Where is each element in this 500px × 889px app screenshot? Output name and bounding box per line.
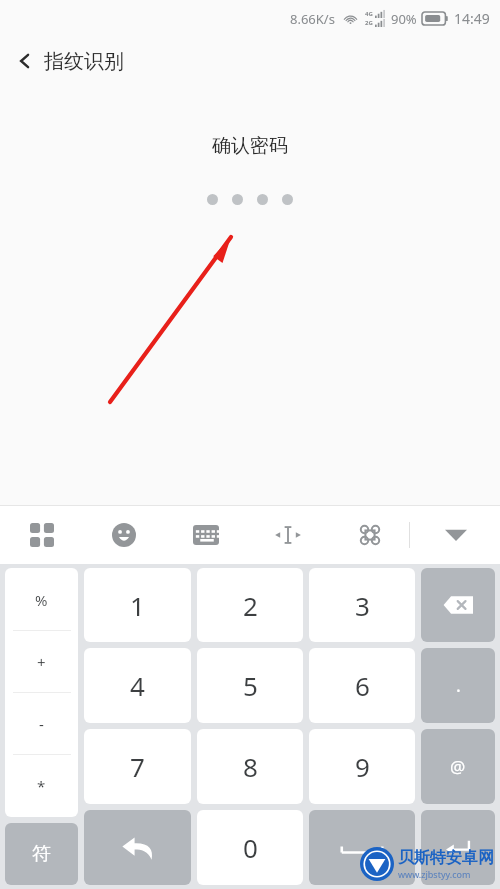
button[interactable]: 5 (197, 648, 303, 723)
button[interactable]: 2 (197, 568, 303, 642)
button[interactable]: Shortcuts (350, 515, 390, 555)
button[interactable]: + (5, 631, 78, 693)
staticText: 1 (130, 588, 145, 623)
staticText: 14:49 (454, 9, 490, 28)
staticText: 6 (355, 668, 370, 703)
button[interactable]: Hide keyboard (436, 515, 476, 555)
button[interactable]: At sign (421, 729, 495, 804)
staticText: www.zjbstyy.com (398, 868, 471, 880)
button[interactable]: Move cursor (268, 515, 308, 555)
staticText: 8.66K/s (290, 10, 335, 28)
button[interactable]: % (5, 568, 78, 631)
staticText: 4G (365, 10, 373, 18)
staticText: 4 (130, 668, 145, 703)
button[interactable]: Backspace return (84, 810, 191, 885)
button[interactable]: Period (421, 648, 495, 723)
staticText: 指纹识别 (44, 49, 124, 74)
button[interactable]: * (5, 755, 78, 817)
staticText: % (35, 590, 48, 610)
button[interactable]: Back (0, 36, 500, 86)
staticText: 符 (32, 842, 51, 866)
staticText: 2 (243, 588, 258, 623)
button[interactable]: 1 (84, 568, 191, 642)
staticText: 90% (391, 10, 417, 28)
staticText: 8 (243, 749, 258, 784)
button[interactable]: Keyboard layouts (22, 515, 62, 555)
staticText: 3 (355, 588, 370, 623)
staticText: . (456, 673, 461, 698)
staticText: 2G (365, 19, 373, 27)
staticText: 5 (243, 668, 258, 703)
button[interactable]: 符 (5, 823, 78, 885)
button[interactable]: - (5, 693, 78, 755)
staticText: * (37, 776, 46, 796)
button[interactable]: 3 (309, 568, 415, 642)
staticText: 贝斯特安卓网 (398, 848, 494, 868)
button[interactable]: 8 (197, 729, 303, 804)
staticText: 7 (130, 749, 145, 784)
button[interactable]: 6 (309, 648, 415, 723)
staticText: 9 (355, 749, 370, 784)
staticText: - (39, 714, 44, 734)
button[interactable]: Enter (421, 810, 495, 885)
button[interactable]: Emoji (104, 515, 144, 555)
staticText: + (37, 652, 46, 672)
staticText: 确认密码 (0, 134, 500, 158)
button[interactable]: 0 (197, 810, 303, 885)
staticText: @ (450, 755, 466, 778)
button[interactable]: Keyboard settings (186, 515, 226, 555)
other: Back (18, 50, 32, 72)
button[interactable]: Delete (421, 568, 495, 642)
button[interactable]: 7 (84, 729, 191, 804)
staticText: 0 (243, 830, 258, 865)
button[interactable]: 4 (84, 648, 191, 723)
button[interactable]: 9 (309, 729, 415, 804)
button[interactable]: Space (309, 810, 415, 885)
